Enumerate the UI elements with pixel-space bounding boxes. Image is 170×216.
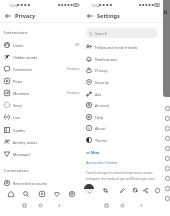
button[interactable]: Security <box>82 76 163 88</box>
button[interactable]: Help <box>82 111 163 123</box>
staticText: Story <box>13 103 22 108</box>
button[interactable]: Notifications <box>82 53 163 65</box>
button[interactable]: Privacy <box>82 64 163 76</box>
button[interactable]: Search <box>86 28 158 38</box>
button[interactable]: Restricted accounts <box>0 177 82 189</box>
staticText: Interactions <box>4 30 28 36</box>
button[interactable]: Screenshot preview <box>84 184 94 194</box>
staticText: Off <box>75 43 80 47</box>
button[interactable]: Profile <box>66 188 77 199</box>
staticText: Theme <box>95 138 107 143</box>
staticText: Meta <box>91 151 100 155</box>
staticText: Everyone <box>67 67 80 71</box>
button[interactable]: Stickers <box>131 186 140 195</box>
button[interactable]: Reels <box>36 188 47 199</box>
button[interactable]: Home <box>36 201 44 209</box>
staticText: b <box>164 9 168 16</box>
button[interactable]: Comments <box>0 63 82 75</box>
button[interactable]: Home <box>118 201 126 209</box>
staticText: 14:32 <box>91 3 100 8</box>
staticText: 14:32 <box>9 3 18 8</box>
staticText: Messages <box>13 152 31 157</box>
staticText: Everyone <box>67 91 80 95</box>
staticText: Privacy <box>95 68 108 73</box>
button[interactable]: Account <box>82 99 163 111</box>
staticText: Guides <box>13 128 26 133</box>
button[interactable]: More <box>153 186 162 195</box>
staticText: Control settings for connected experienc… <box>86 171 161 186</box>
button[interactable]: Back <box>137 201 145 209</box>
button[interactable]: Live <box>0 111 82 123</box>
staticText: About <box>95 126 106 131</box>
button[interactable]: Crop <box>101 186 110 195</box>
staticText: Help <box>95 115 104 120</box>
button[interactable]: Story <box>0 99 82 111</box>
button[interactable]: Hidden words <box>0 51 82 63</box>
button[interactable]: Mentions <box>0 87 82 99</box>
button[interactable]: Follow and invite friends <box>82 41 163 53</box>
staticText: Comments <box>13 67 32 72</box>
staticText: Limits <box>13 43 24 48</box>
button[interactable]: Back <box>3 11 12 20</box>
button[interactable]: Activity status <box>0 136 82 148</box>
staticText: Ads <box>95 92 102 97</box>
button[interactable]: Recents <box>20 201 28 209</box>
staticText: Live <box>13 115 20 120</box>
button[interactable]: Posts <box>0 75 82 87</box>
staticText: Account <box>95 103 110 108</box>
staticText: Privacy <box>15 12 36 20</box>
button[interactable]: Home <box>5 188 16 199</box>
staticText: Connections <box>4 168 29 174</box>
button[interactable]: Guides <box>0 124 82 136</box>
staticText: Search <box>95 31 108 36</box>
staticText: Restricted accounts <box>13 181 47 186</box>
staticText: Notifications <box>95 57 117 62</box>
button[interactable]: Back <box>55 201 63 209</box>
button[interactable]: Back <box>85 11 94 20</box>
button[interactable]: About <box>82 122 163 134</box>
staticText: Security <box>95 80 109 85</box>
staticText: Activity status <box>13 140 37 145</box>
button[interactable]: Limits <box>0 39 82 51</box>
button[interactable]: Recents <box>102 201 110 209</box>
button[interactable]: Ads <box>82 88 163 100</box>
button[interactable]: Theme <box>82 134 163 146</box>
staticText: Posts <box>13 79 23 84</box>
button[interactable]: Search <box>20 188 31 199</box>
button[interactable]: Messages <box>0 148 82 160</box>
button[interactable]: Share <box>141 186 150 195</box>
button[interactable]: Edit <box>118 186 127 195</box>
staticText: Follow and invite friends <box>95 45 138 50</box>
button[interactable]: Activity <box>51 188 62 199</box>
staticText: Hidden words <box>13 55 38 60</box>
staticText: Accounts Centre <box>86 160 118 166</box>
staticText: Mentions <box>13 91 30 96</box>
staticText: Settings <box>97 12 120 20</box>
